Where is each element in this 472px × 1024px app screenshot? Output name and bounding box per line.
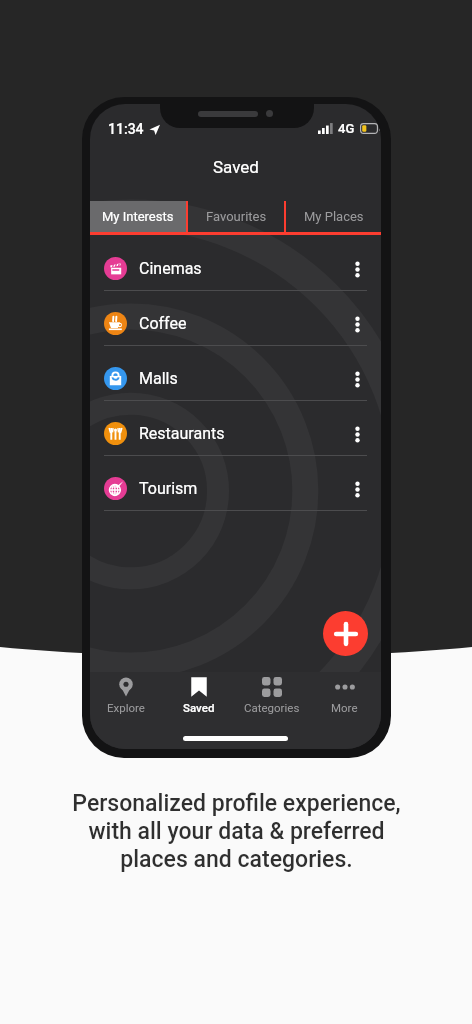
button[interactable]: Explore: [90, 672, 162, 714]
button[interactable]: Malls: [90, 351, 381, 406]
staticText: Saved: [183, 701, 215, 714]
staticText: More: [331, 701, 358, 714]
staticText: Favourites: [206, 209, 267, 224]
staticText: My Interests: [102, 209, 174, 224]
button[interactable]: Categories: [235, 672, 308, 714]
staticText: Personalized profile experience, with al…: [72, 790, 401, 873]
staticText: Coffee: [139, 314, 187, 333]
staticText: Cinemas: [139, 259, 202, 278]
staticText: Tourism: [139, 479, 198, 498]
staticText: Saved: [213, 157, 259, 177]
button[interactable]: Saved: [162, 672, 235, 714]
staticText: Malls: [139, 369, 178, 388]
button[interactable]: Favourites: [188, 201, 284, 232]
staticText: Restaurants: [139, 424, 225, 443]
staticText: Explore: [107, 701, 145, 714]
button[interactable]: Cinemas: [90, 241, 381, 296]
button[interactable]: More options: [346, 313, 368, 335]
button[interactable]: More options: [346, 258, 368, 280]
button[interactable]: More: [308, 672, 381, 714]
staticText: My Places: [304, 209, 364, 224]
button[interactable]: Coffee: [90, 296, 381, 351]
button[interactable]: More options: [346, 368, 368, 390]
button[interactable]: Restaurants: [90, 406, 381, 461]
staticText: Categories: [244, 701, 300, 714]
button[interactable]: Add place: [323, 611, 368, 656]
staticText: 4G: [338, 121, 355, 136]
button[interactable]: More options: [346, 478, 368, 500]
button[interactable]: More options: [346, 423, 368, 445]
button[interactable]: My Interests: [90, 201, 186, 232]
button[interactable]: Tourism: [90, 461, 381, 516]
staticText: 11:34: [108, 121, 144, 137]
button[interactable]: My Places: [286, 201, 381, 232]
